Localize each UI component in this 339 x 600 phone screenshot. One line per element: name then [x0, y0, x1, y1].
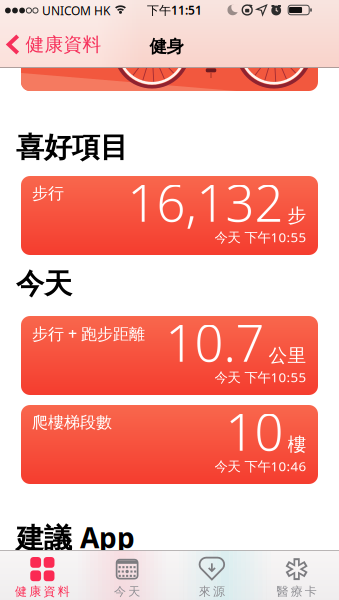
staticText: 下午11:51 — [147, 2, 202, 18]
staticText: 10.7 — [165, 308, 264, 376]
staticText: 今天 — [16, 267, 72, 301]
staticText: 健身 — [149, 36, 183, 57]
staticText: 今天 下午10:55 — [214, 368, 306, 386]
staticText: 康 — [29, 584, 41, 599]
staticText: 10 — [225, 397, 283, 465]
button[interactable]: 步行 + 跑步距離 — [21, 316, 318, 395]
staticText: 今天 下午10:55 — [214, 228, 306, 246]
staticText: 料 — [58, 584, 70, 599]
staticText: 療 — [291, 584, 303, 599]
staticText: 喜好項目 — [16, 130, 128, 165]
staticText: 建議 App — [16, 519, 135, 556]
staticText: 資 — [43, 584, 55, 599]
button[interactable]: 健康資料 — [6, 33, 101, 56]
staticText: 16,132 — [127, 168, 283, 236]
staticText: 來 — [199, 584, 211, 599]
staticText: 步 — [287, 204, 306, 227]
staticText: 步行 + 跑步距離 — [32, 323, 145, 344]
button[interactable]: 步行 — [21, 176, 318, 255]
staticText: 天 — [128, 584, 140, 599]
button[interactable]: 今 — [85, 551, 170, 600]
staticText: 公里 — [268, 344, 306, 367]
staticText: 健 — [15, 584, 27, 599]
staticText: 步行 — [32, 184, 64, 203]
button[interactable]: 來 — [169, 551, 254, 600]
staticText: 樓 — [287, 433, 306, 456]
button[interactable]: 爬樓梯段數 — [21, 405, 318, 484]
staticText: 源 — [213, 584, 225, 599]
staticText: 今 — [114, 584, 126, 599]
button[interactable]: 醫 — [254, 551, 339, 600]
staticText: 卡 — [305, 584, 317, 599]
button[interactable]: 健 — [0, 551, 85, 600]
staticText: 今天 下午10:46 — [214, 457, 306, 475]
staticText: 健康資料 — [25, 33, 101, 56]
staticText: UNICOM HK — [42, 2, 110, 18]
staticText: 醫 — [276, 584, 288, 599]
staticText: 爬樓梯段數 — [32, 413, 112, 432]
